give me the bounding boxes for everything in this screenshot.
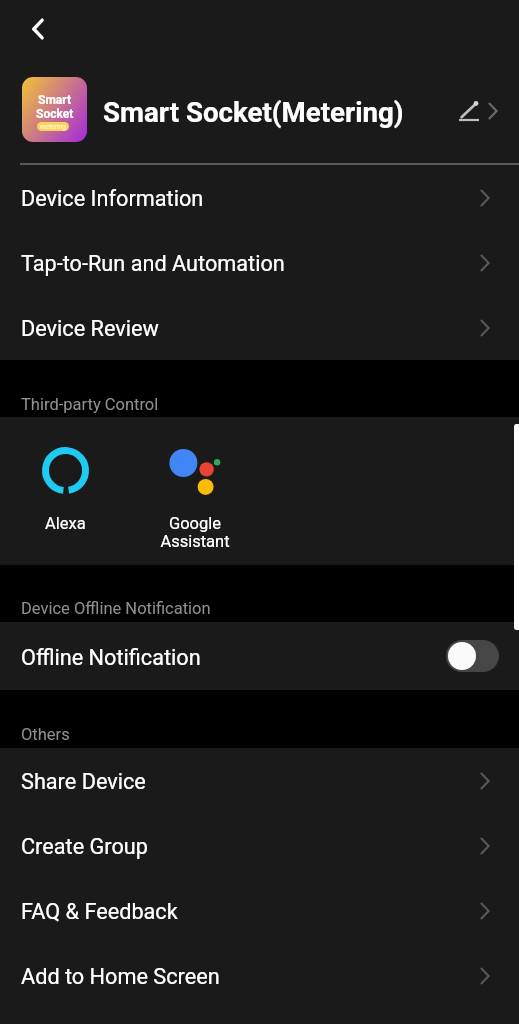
staticText: Offline Notification xyxy=(21,645,201,670)
staticText: Add to Home Screen xyxy=(21,964,220,989)
button[interactable]: Offline Notification toggle xyxy=(446,640,499,672)
button[interactable]: Edit device name xyxy=(452,95,486,129)
button[interactable]: FAQ & Feedback xyxy=(0,878,519,943)
button[interactable]: Add to Home Screen xyxy=(0,943,519,1008)
staticText: metering xyxy=(40,123,66,131)
staticText: FAQ & Feedback xyxy=(21,899,178,924)
button[interactable]: Create Group xyxy=(0,813,519,878)
button[interactable]: Device Information xyxy=(0,165,519,230)
button[interactable]: Offline Notification xyxy=(0,622,519,690)
staticText: Others xyxy=(21,725,70,744)
button[interactable]: Tap-to-Run and Automation xyxy=(0,230,519,295)
staticText: Third-party Control xyxy=(21,395,159,414)
staticText: Alexa xyxy=(45,514,86,533)
staticText: Device Offline Notification xyxy=(21,599,211,618)
button[interactable]: Smart xyxy=(0,67,519,163)
staticText: Socket xyxy=(36,107,74,121)
staticText: Tap-to-Run and Automation xyxy=(21,251,285,276)
staticText: Device Review xyxy=(21,316,159,341)
button[interactable]: Share Device xyxy=(0,748,519,813)
button[interactable]: Alexa xyxy=(13,417,117,533)
staticText: Share Device xyxy=(21,769,146,794)
button[interactable]: Device Review xyxy=(0,295,519,360)
staticText: Smart Socket(Metering) xyxy=(103,96,404,128)
button[interactable]: Back xyxy=(21,12,55,46)
button[interactable]: Google Assistant xyxy=(143,417,247,552)
staticText: Device Information xyxy=(21,186,204,211)
staticText: Smart xyxy=(38,93,71,107)
staticText: Google Assistant xyxy=(160,514,230,552)
staticText: Create Group xyxy=(21,834,148,859)
